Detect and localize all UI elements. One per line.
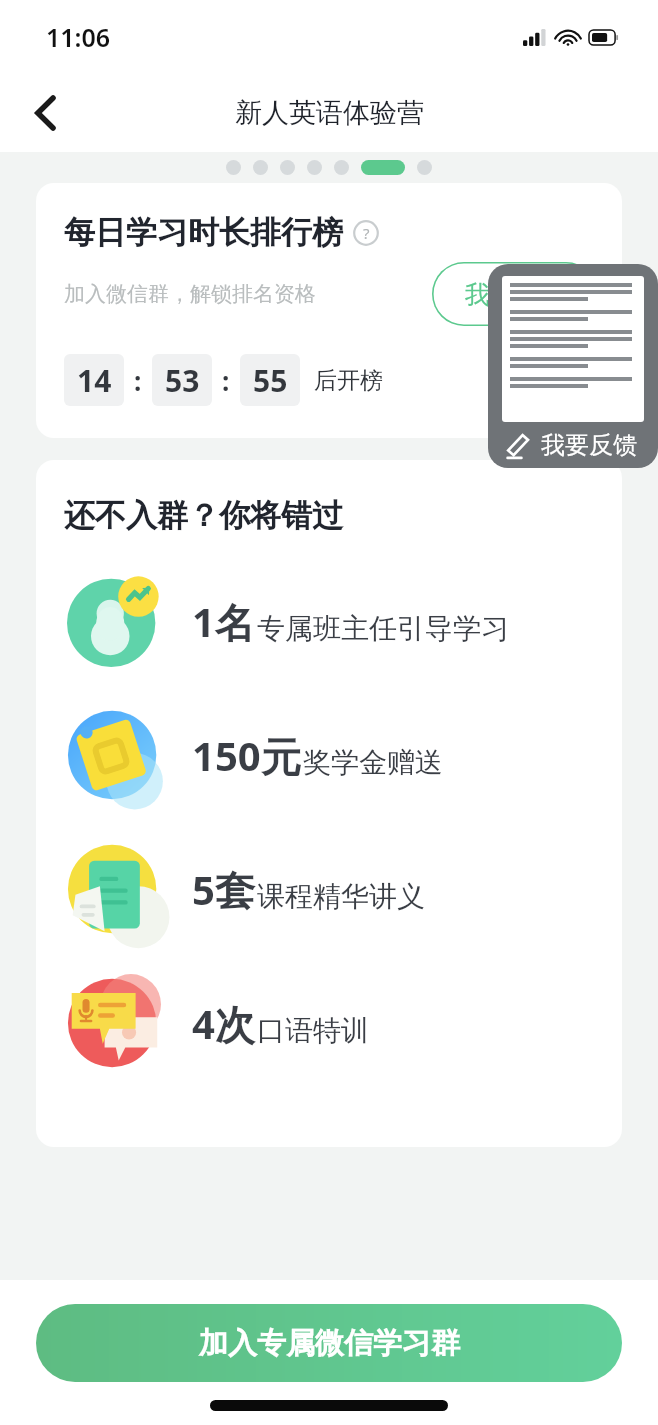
button[interactable]: 我要反馈 (488, 264, 658, 468)
staticText: 我要上榜 (465, 279, 565, 310)
button[interactable]: 加入专属微信学习群 (36, 1304, 622, 1382)
staticText: 11:06 (46, 20, 111, 54)
staticText: 150元 (192, 728, 301, 783)
staticText: 53 (165, 360, 200, 401)
staticText: 口语特训 (257, 1013, 369, 1048)
button[interactable]: 1名 (64, 571, 598, 671)
staticText: 5套 (192, 862, 255, 917)
staticText: 加入微信群，解锁排名资格 (64, 281, 316, 307)
button[interactable]: 5套 (64, 839, 598, 939)
button[interactable]: Back (18, 85, 74, 141)
staticText: 55 (253, 360, 288, 401)
staticText: 还不入群？你将错过 (64, 496, 343, 535)
staticText: : (134, 363, 142, 398)
button[interactable]: 4次 (64, 973, 598, 1073)
staticText: 1名 (192, 594, 255, 649)
staticText: 加入专属微信学习群 (199, 1325, 460, 1362)
button[interactable]: 150元 (64, 705, 598, 805)
staticText: 奖学金赠送 (303, 745, 443, 780)
staticText: 专属班主任引导学习 (257, 611, 509, 646)
staticText: : (222, 363, 230, 398)
staticText: 我要反馈 (541, 430, 637, 460)
staticText: 后开榜 (314, 366, 383, 395)
button[interactable]: Help (353, 220, 379, 246)
staticText: 新人英语体验营 (235, 96, 424, 130)
staticText: 14 (77, 360, 112, 401)
staticText: 每日学习时长排行榜 (64, 213, 343, 252)
staticText: ? (363, 223, 370, 243)
staticText: 4次 (192, 996, 255, 1051)
staticText: 课程精华讲义 (257, 879, 425, 914)
button[interactable]: 我要上榜 (432, 262, 598, 326)
